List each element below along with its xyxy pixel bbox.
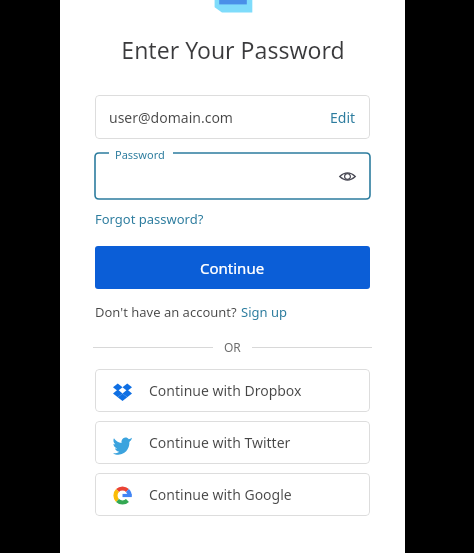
staticText: Continue with Google <box>149 485 292 504</box>
button[interactable]: Continue <box>95 246 370 289</box>
staticText: Continue <box>200 258 265 278</box>
staticText: Continue with Twitter <box>149 433 291 452</box>
button[interactable]: Continue with Twitter <box>95 421 370 464</box>
button[interactable]: user@domain.com <box>95 95 370 139</box>
staticText: user@domain.com <box>109 108 233 127</box>
button[interactable]: Edit <box>330 108 356 127</box>
button[interactable]: Password <box>95 147 370 199</box>
button[interactable]: Continue with Dropbox <box>95 369 370 412</box>
staticText: Password <box>115 147 165 162</box>
button[interactable]: Forgot password? <box>95 207 204 231</box>
staticText: OR <box>224 339 241 355</box>
staticText: Don't have an account? <box>95 303 241 321</box>
staticText: Continue with Dropbox <box>149 381 302 400</box>
button[interactable]: Continue with Google <box>95 473 370 516</box>
button[interactable]: Sign up <box>241 303 287 321</box>
staticText: Enter Your Password <box>121 34 345 65</box>
button[interactable]: Show password <box>336 165 358 187</box>
